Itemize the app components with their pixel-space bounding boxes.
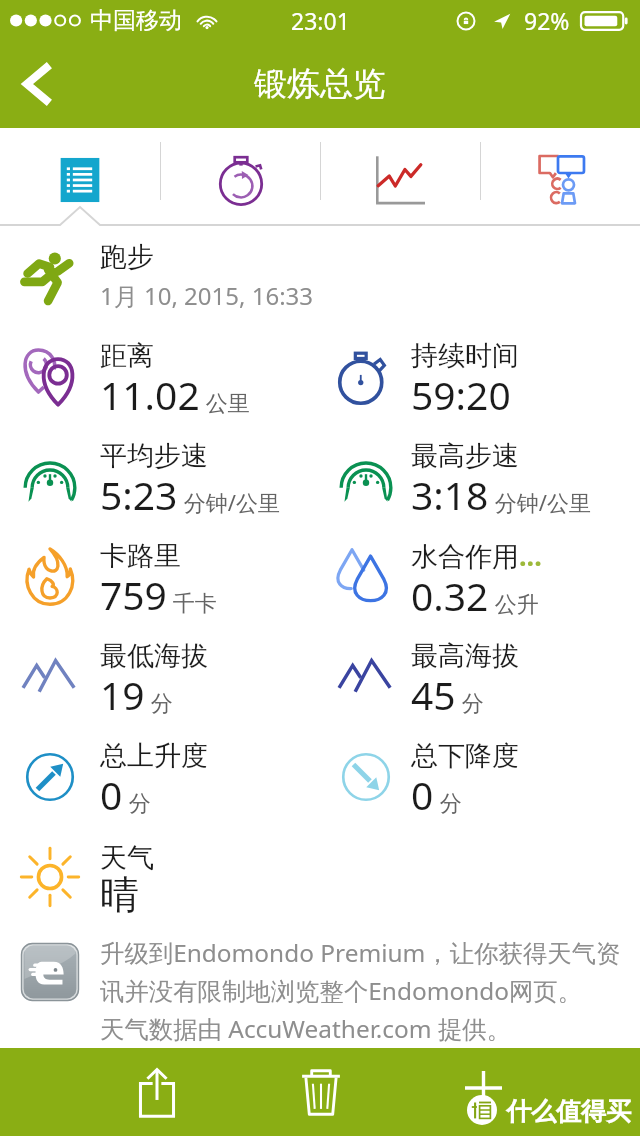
button[interactable]: Add xyxy=(437,1048,531,1136)
staticText: 持续时间 xyxy=(411,339,519,373)
button[interactable]: 天气 xyxy=(0,830,320,930)
staticText: ... xyxy=(519,537,542,574)
button[interactable]: 最高海拔 xyxy=(320,630,640,730)
staticText: 分 xyxy=(456,687,484,717)
staticText: 公里 xyxy=(200,387,250,417)
button[interactable]: 总下降度 xyxy=(320,730,640,830)
button[interactable]: Back xyxy=(0,40,76,128)
staticText: 总下降度 xyxy=(411,739,519,773)
staticText: 59:20 xyxy=(411,368,511,421)
staticText: 升级到Endomondo Premium，让你获得天气资 xyxy=(100,936,621,969)
staticText: 23:01 xyxy=(291,5,350,36)
staticText: 45 xyxy=(411,668,456,721)
staticText: 锻炼总览 xyxy=(254,63,386,105)
staticText: 天气数据由 AccuWeather.com 提供。 xyxy=(100,1012,512,1045)
staticText: 759 xyxy=(100,568,167,621)
staticText: 1月 10, 2015, 16:33 xyxy=(100,279,314,312)
button[interactable]: 水合作用 xyxy=(320,530,640,630)
staticText: 公升 xyxy=(489,588,539,618)
staticText: 5:23 xyxy=(100,468,178,521)
button[interactable]: 距离 xyxy=(0,330,320,430)
staticText: 最高步速 xyxy=(411,439,519,473)
staticText: 分 xyxy=(434,787,462,817)
button[interactable]: 总上升度 xyxy=(0,730,320,830)
button[interactable]: 升级到Endomondo Premium，让你获得天气资 xyxy=(0,936,640,1045)
staticText: 最高海拔 xyxy=(411,639,519,673)
staticText: 什么值得买 xyxy=(506,1096,631,1127)
button[interactable]: 平均步速 xyxy=(0,430,320,530)
staticText: 分 xyxy=(123,787,151,817)
staticText: 92% xyxy=(524,5,570,36)
staticText: 距离 xyxy=(100,339,154,373)
button[interactable]: 卡路里 xyxy=(0,530,320,630)
staticText: 中国移动 xyxy=(90,6,182,35)
staticText: 卡路里 xyxy=(100,539,181,573)
staticText: 最低海拔 xyxy=(100,639,208,673)
staticText: 分 xyxy=(145,687,173,717)
staticText: 讯并没有限制地浏览整个Endomondo网页。 xyxy=(100,974,583,1007)
button[interactable]: 最低海拔 xyxy=(0,630,320,730)
button[interactable]: History xyxy=(161,128,320,226)
staticText: 0 xyxy=(411,768,434,821)
button[interactable]: 持续时间 xyxy=(320,330,640,430)
staticText: 0.32 xyxy=(411,569,489,622)
staticText: 天气 xyxy=(100,841,154,875)
staticText: 平均步速 xyxy=(100,439,208,473)
staticText: 0 xyxy=(100,768,123,821)
button[interactable]: Overview xyxy=(0,128,160,226)
staticText: 晴 xyxy=(100,870,139,919)
button[interactable]: 跑步 xyxy=(0,226,640,330)
button[interactable]: Comments xyxy=(481,128,640,226)
staticText: 分钟/公里 xyxy=(178,487,280,517)
staticText: 11.02 xyxy=(100,368,200,421)
staticText: 水合作用 xyxy=(411,540,519,574)
button[interactable]: 最高步速 xyxy=(320,430,640,530)
staticText: 总上升度 xyxy=(100,739,208,773)
staticText: 19 xyxy=(100,668,145,721)
staticText: 分钟/公里 xyxy=(489,487,591,517)
button[interactable]: Share xyxy=(110,1048,204,1136)
button[interactable]: Delete xyxy=(274,1048,368,1136)
staticText: 千卡 xyxy=(167,587,217,617)
staticText: 3:18 xyxy=(411,468,489,521)
staticText: 跑步 xyxy=(100,240,154,274)
button[interactable]: Graphs xyxy=(321,128,480,226)
